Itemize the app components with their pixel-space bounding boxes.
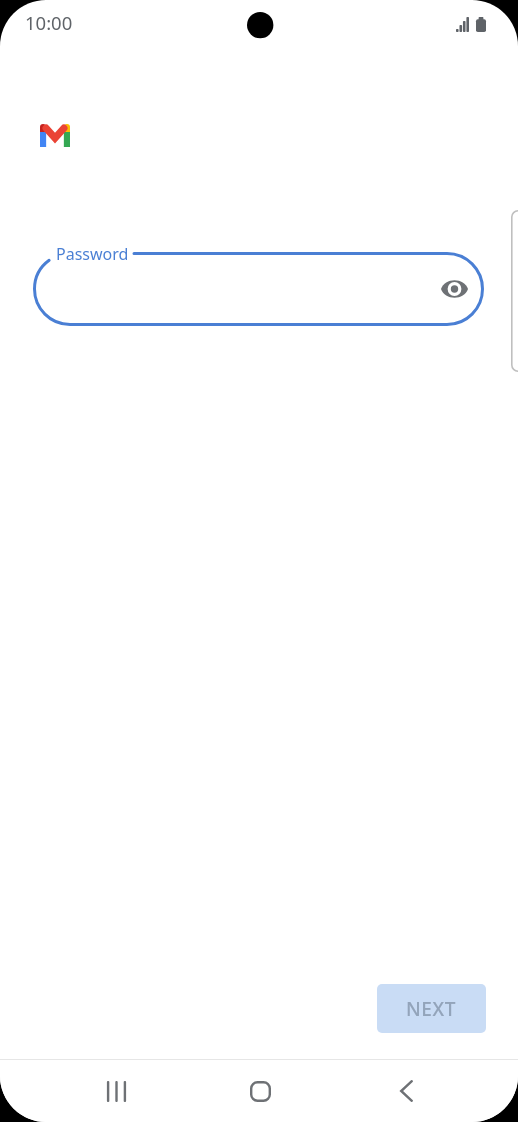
button[interactable]: Show password <box>432 267 476 311</box>
button[interactable]: Recent apps <box>82 1067 150 1115</box>
staticText: 10:00 <box>25 10 73 35</box>
staticText: Password <box>56 243 129 265</box>
button[interactable]: Home <box>226 1067 294 1115</box>
staticText: NEXT <box>406 996 457 1022</box>
button[interactable]: NEXT <box>377 984 486 1033</box>
button[interactable]: Password <box>33 252 484 326</box>
button[interactable]: Back <box>372 1067 440 1115</box>
